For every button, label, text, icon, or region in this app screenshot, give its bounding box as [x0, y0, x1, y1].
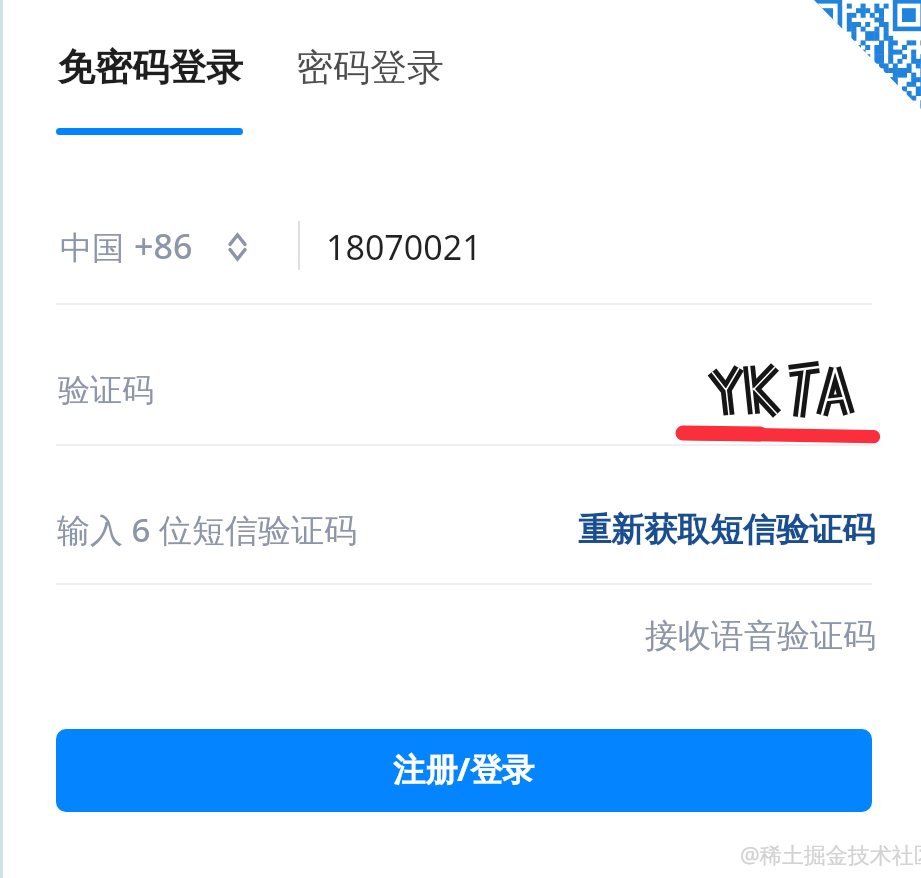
- button[interactable]: 验证码: [56, 345, 616, 425]
- staticText: +86: [134, 223, 193, 269]
- staticText: @稀土掘金技术社区: [740, 839, 921, 869]
- staticText: 中国: [60, 228, 124, 268]
- staticText: 验证码: [58, 370, 154, 410]
- button[interactable]: 18070021: [310, 221, 872, 271]
- staticText: 18070021: [326, 224, 482, 270]
- button[interactable]: 免密码登录: [58, 44, 243, 91]
- button[interactable]: 输入 6 位短信验证码: [56, 484, 536, 546]
- button[interactable]: 接收语音验证码: [645, 615, 876, 657]
- button[interactable]: 重新获取短信验证码: [578, 509, 875, 551]
- button[interactable]: Select country calling code: [56, 218, 256, 272]
- staticText: 注册/登录: [393, 747, 535, 791]
- button[interactable]: Captcha image, tap to refresh: [674, 358, 886, 448]
- button[interactable]: 注册/登录: [56, 729, 872, 812]
- staticText: 输入 6 位短信验证码: [57, 507, 358, 552]
- button[interactable]: 密码登录: [296, 44, 444, 91]
